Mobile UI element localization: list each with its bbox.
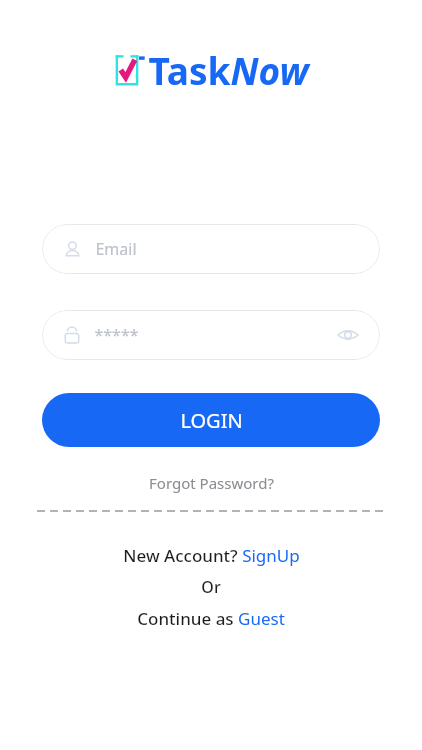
button[interactable]: Continue as Guest <box>129 604 293 633</box>
button[interactable]: Forgot Password? <box>139 469 284 497</box>
staticText: Forgot Password? <box>149 473 274 493</box>
button[interactable]: ***** <box>42 310 380 360</box>
staticText: Continue as Guest <box>137 607 285 630</box>
staticText: TaskNow <box>148 45 309 95</box>
staticText: Email <box>95 238 137 260</box>
button[interactable]: LOGIN <box>42 393 380 447</box>
button[interactable]: Show password <box>334 321 362 349</box>
staticText: Or <box>201 576 221 598</box>
staticText: New Account? SignUp <box>123 544 300 567</box>
button[interactable]: New Account? SignUp <box>115 541 308 570</box>
staticText: LOGIN <box>180 407 243 434</box>
staticText: ***** <box>94 324 139 346</box>
button[interactable]: Email <box>42 224 380 274</box>
